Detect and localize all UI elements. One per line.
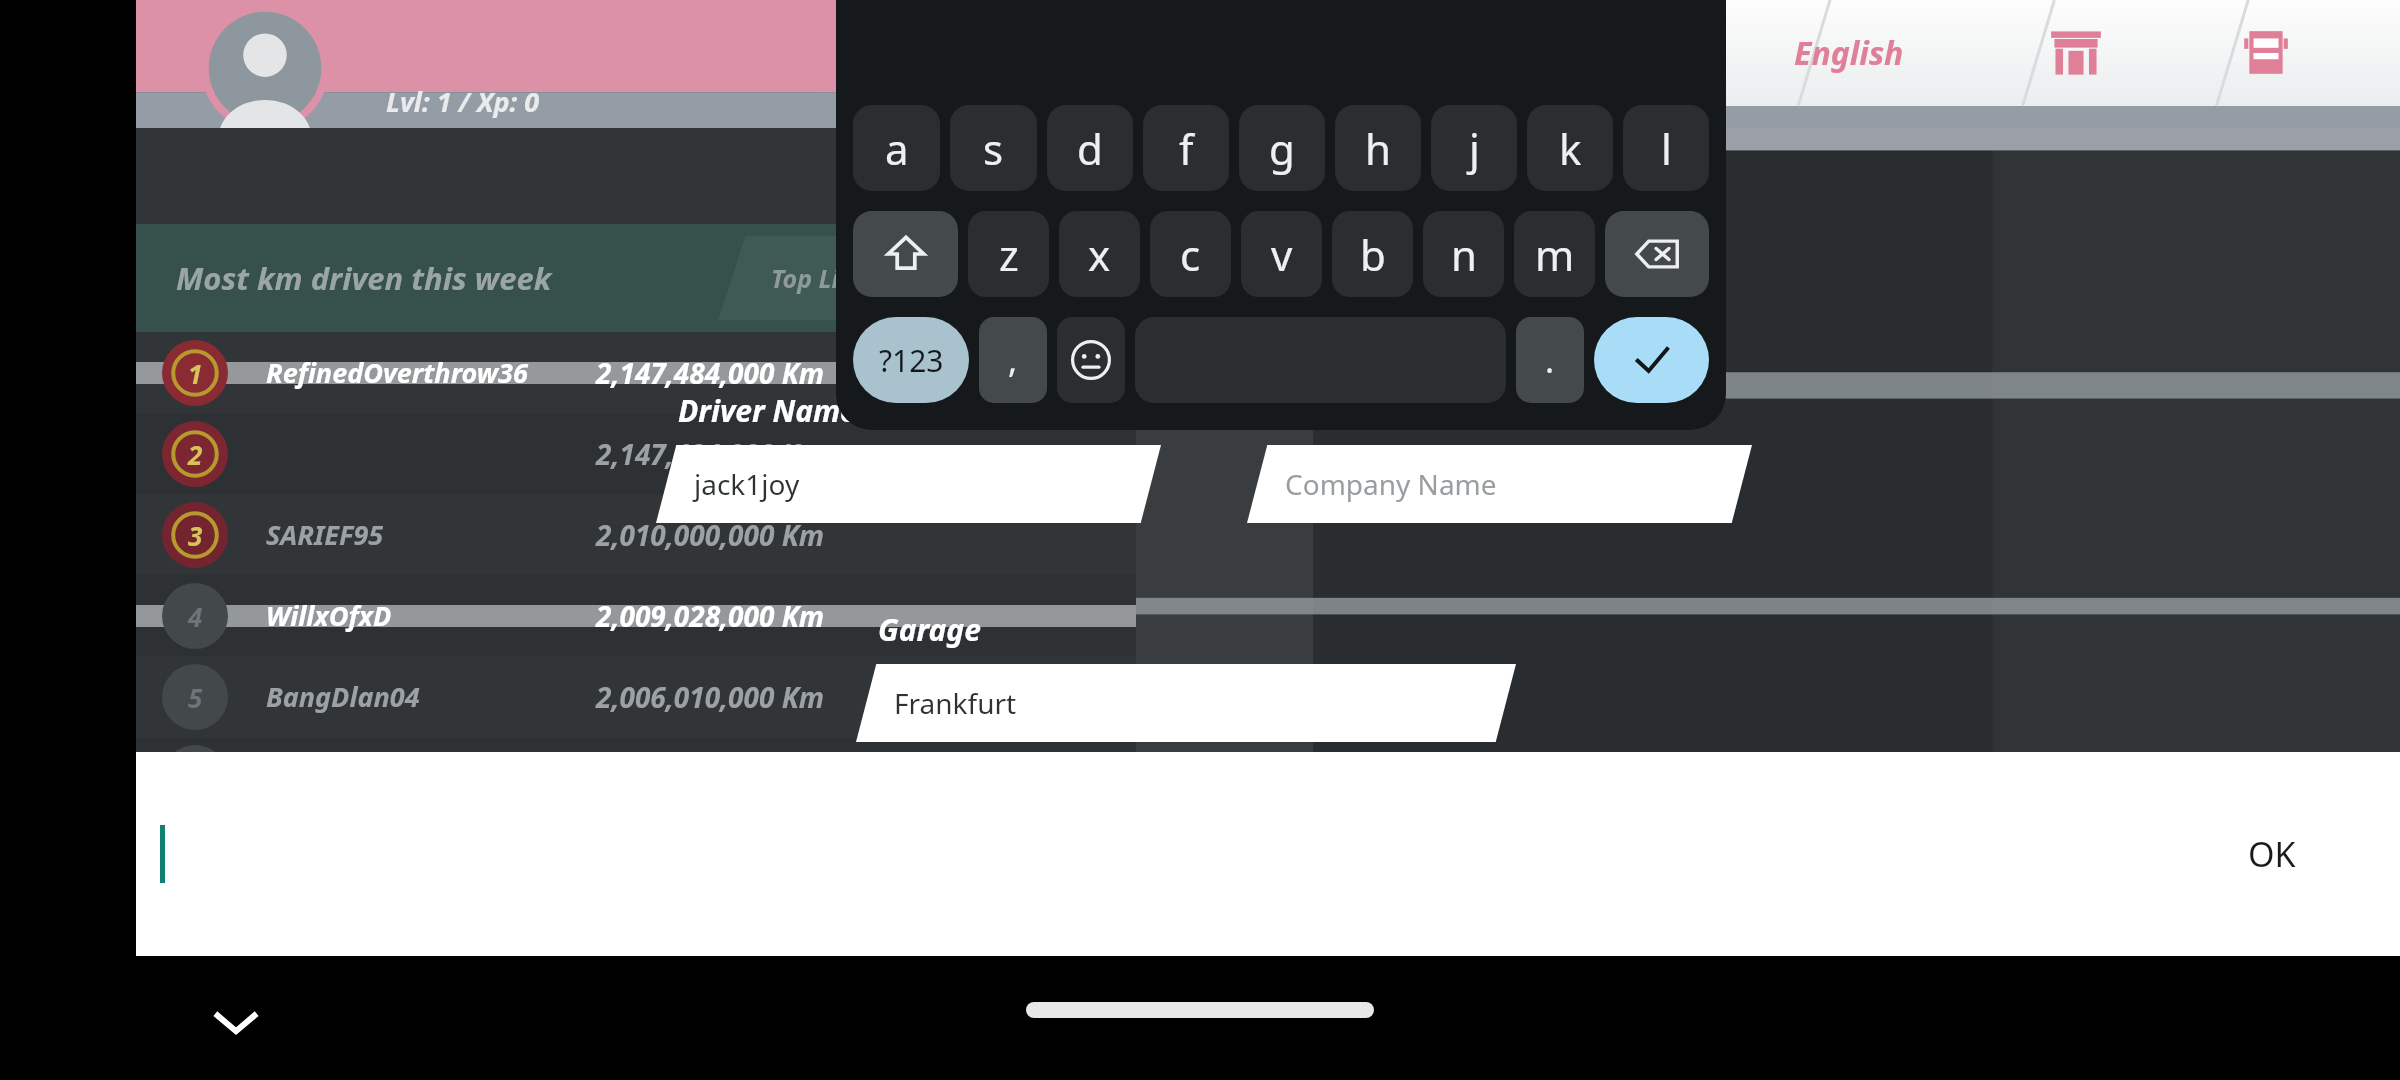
button[interactable]: l — [1623, 105, 1709, 191]
staticText: s — [983, 120, 1004, 177]
button[interactable]: Shop — [2036, 13, 2116, 93]
staticText: , — [1008, 337, 1018, 383]
button[interactable]: Profile avatar — [192, 4, 338, 132]
button[interactable]: d — [1047, 105, 1133, 191]
button[interactable]: 3 — [136, 494, 1136, 575]
button[interactable]: Show me — [920, 236, 1116, 320]
staticText: English — [1794, 31, 1904, 75]
staticText: d — [1077, 120, 1103, 177]
staticText: Driver Name — [678, 390, 857, 431]
staticText: Company Name — [1285, 465, 1497, 503]
button[interactable]: j — [1431, 105, 1517, 191]
staticText: 2,009,028,000 Km — [596, 597, 825, 635]
staticText: m — [1535, 226, 1575, 283]
staticText: 2,147,484,000 Km — [596, 435, 825, 473]
staticText: Company Name — [1269, 390, 1494, 431]
button[interactable]: c — [1150, 211, 1231, 297]
button[interactable]: OK — [2232, 821, 2312, 887]
staticText: v — [1271, 226, 1293, 283]
button[interactable]: n — [1423, 211, 1504, 297]
button[interactable]: OK — [136, 752, 2400, 956]
button[interactable]: , — [979, 317, 1047, 403]
staticText: RefinedOverthrow36 — [266, 354, 528, 391]
staticText: 1 — [188, 356, 203, 391]
staticText: 3 — [188, 518, 203, 553]
staticText: Top List — [771, 261, 862, 295]
button[interactable]: s — [950, 105, 1037, 191]
staticText: g — [1269, 120, 1295, 177]
staticText: SARIEF95 — [266, 516, 384, 553]
button[interactable]: 5 — [136, 656, 1136, 737]
button[interactable]: English — [1772, 19, 1926, 87]
staticText: j — [1469, 120, 1480, 177]
staticText: Show me — [965, 261, 1071, 295]
staticText: a — [885, 120, 909, 177]
button[interactable]: ?123 — [853, 317, 969, 403]
button[interactable]: Enter — [1594, 317, 1709, 403]
button[interactable]: m — [1514, 211, 1595, 297]
button[interactable]: 2 — [136, 413, 1136, 494]
button[interactable]: h — [1335, 105, 1421, 191]
button[interactable]: 4 — [136, 575, 1136, 656]
staticText: Frankfurt — [894, 684, 1017, 722]
button[interactable]: Shift — [853, 211, 958, 297]
staticText: k — [1559, 120, 1582, 177]
staticText: Most km driven this week — [176, 257, 552, 299]
staticText: c — [1180, 226, 1201, 283]
button[interactable]: z — [968, 211, 1049, 297]
button[interactable]: 1 — [136, 332, 1136, 413]
button[interactable]: a — [853, 105, 940, 191]
staticText: n — [1451, 226, 1477, 283]
staticText: 4 — [188, 599, 203, 634]
button[interactable]: 6 — [136, 737, 1136, 818]
staticText: . — [1545, 337, 1555, 383]
button[interactable]: Backspace — [1605, 211, 1709, 297]
staticText: ?123 — [879, 340, 944, 381]
button[interactable]: g — [1239, 105, 1325, 191]
staticText: Garage — [878, 609, 981, 650]
staticText: x — [1088, 226, 1111, 283]
staticText: WillxOfxD — [266, 597, 392, 634]
button[interactable]: x — [1059, 211, 1140, 297]
staticText: z — [999, 226, 1019, 283]
staticText: 2 — [188, 437, 203, 472]
staticText: jack1joy — [694, 465, 800, 503]
staticText: 2,147,484,000 Km — [596, 354, 825, 392]
staticText: l — [1661, 120, 1672, 177]
staticText: h — [1365, 120, 1391, 177]
button[interactable]: b — [1332, 211, 1413, 297]
staticText: BangDlan04 — [266, 678, 420, 715]
staticText: 2,006,010,000 Km — [596, 678, 825, 716]
staticText: 5 — [188, 680, 203, 715]
button[interactable]: v — [1241, 211, 1322, 297]
staticText: 2,010,000,000 Km — [596, 516, 825, 554]
button[interactable]: k — [1527, 105, 1613, 191]
button[interactable]: Hide keyboard — [200, 986, 272, 1058]
staticText: b — [1360, 226, 1386, 283]
button[interactable]: Emoji — [1057, 317, 1125, 403]
button[interactable]: . — [1516, 317, 1584, 403]
staticText: OK — [2248, 831, 2296, 877]
staticText: f — [1179, 120, 1194, 177]
button[interactable]: f — [1143, 105, 1229, 191]
button[interactable]: Garage — [2226, 13, 2306, 93]
button[interactable]: Top List — [718, 236, 914, 320]
staticText: Lvl: 1 / Xp: 0 — [386, 83, 540, 120]
